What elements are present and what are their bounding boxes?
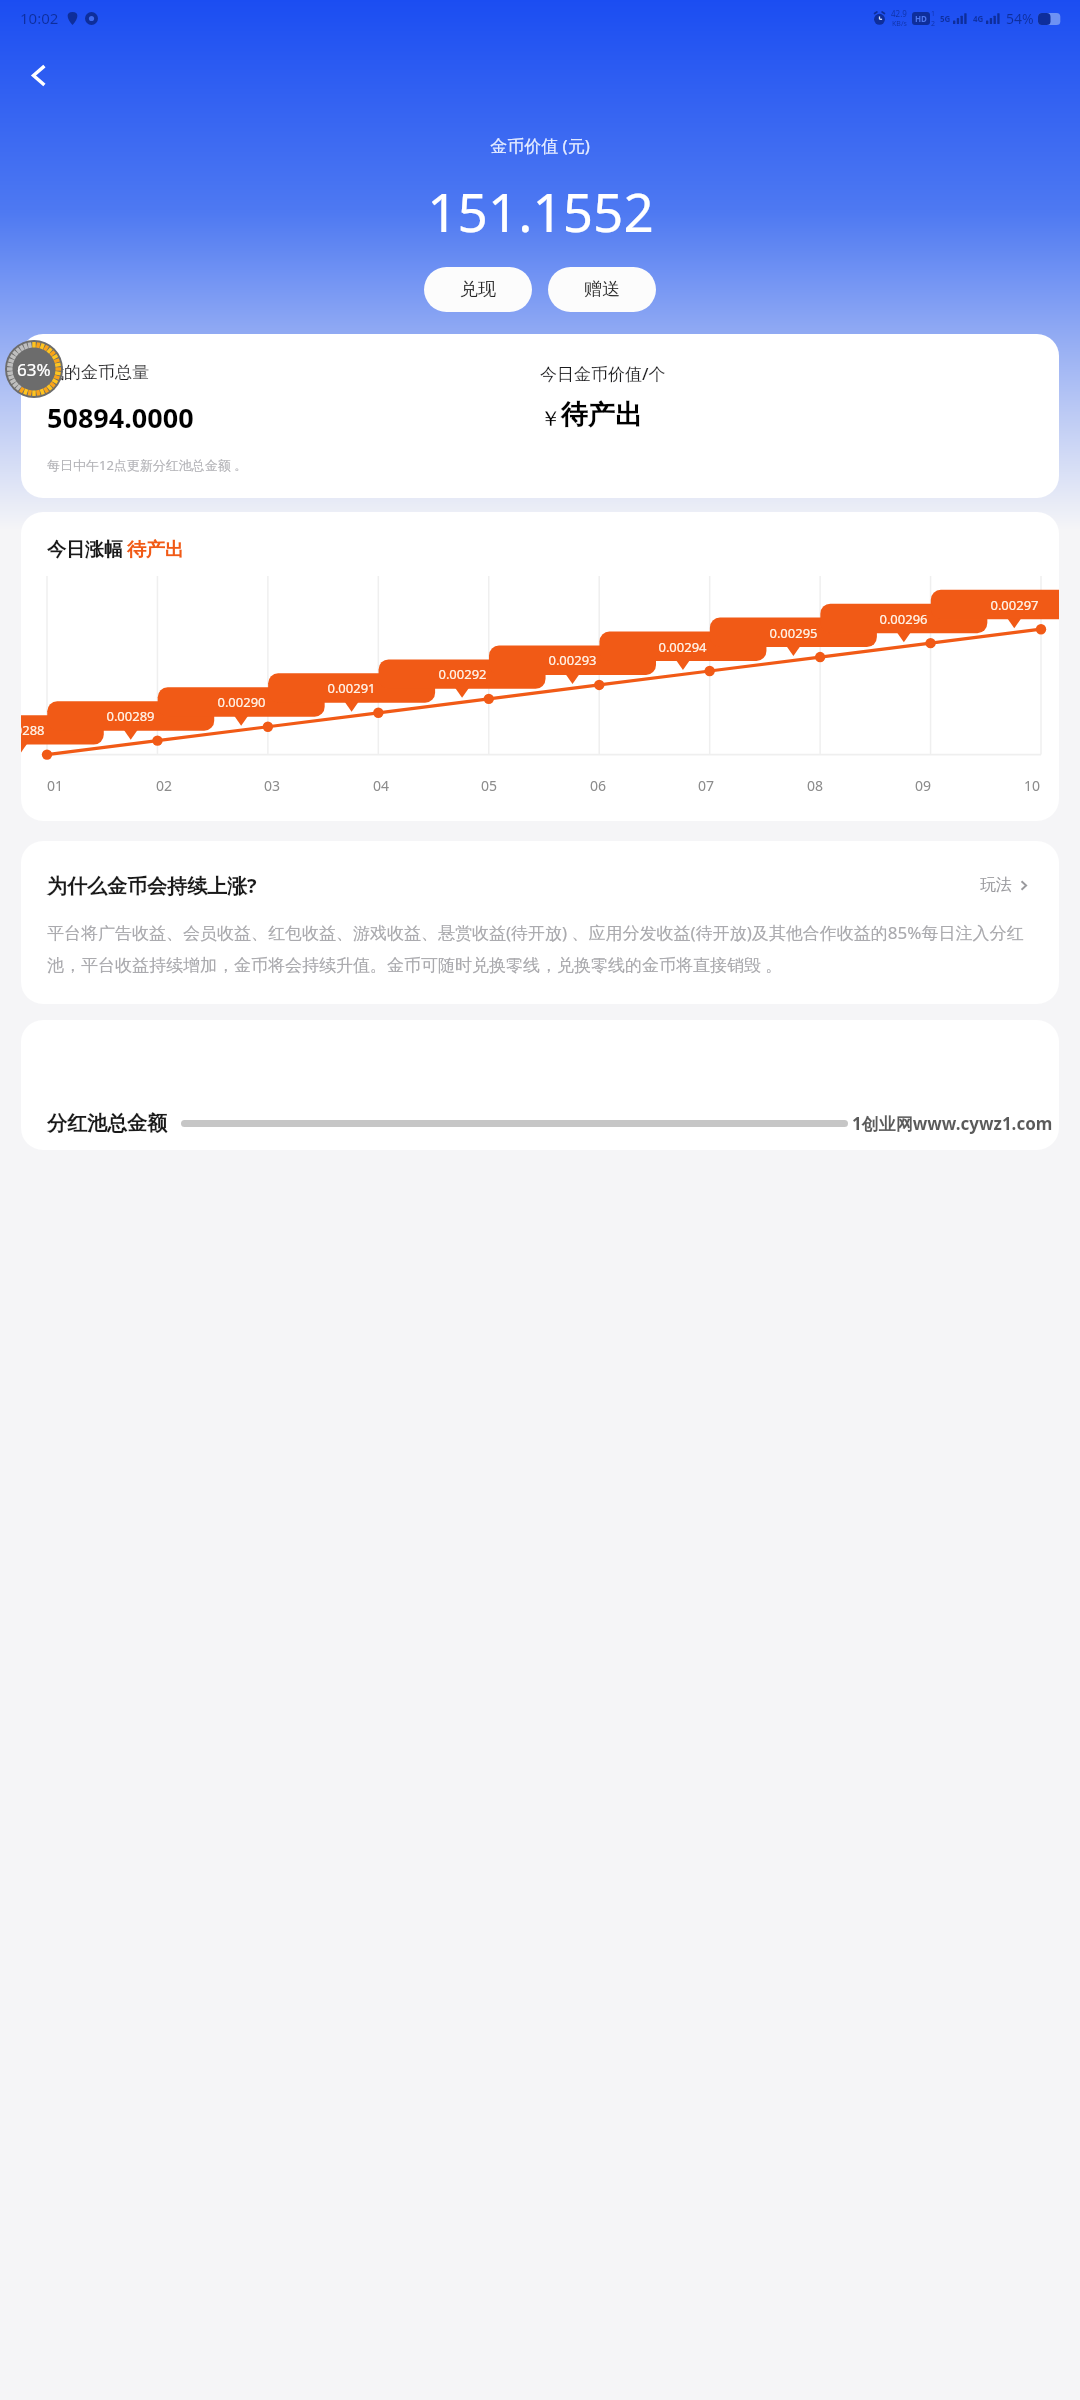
button[interactable]: 玩法 (976, 871, 1033, 899)
staticText: 0.00294 (658, 638, 707, 656)
staticText: 兑现 (460, 278, 496, 301)
staticText: 我的金币总量 (47, 362, 149, 383)
button[interactable]: 为什么金币会持续上涨? (21, 841, 1059, 1004)
staticText: 50894.0000 (47, 399, 194, 436)
staticText: 02 (156, 776, 173, 795)
staticText: 0.00290 (217, 693, 266, 711)
staticText: 07 (698, 776, 715, 795)
staticText: 2 (931, 19, 936, 29)
staticText: 分红池总金额 (47, 1111, 167, 1136)
staticText: 04 (373, 776, 390, 795)
staticText: HD (915, 13, 927, 24)
staticText: 玩法 (980, 875, 1012, 895)
button[interactable]: Back (14, 51, 62, 99)
staticText: 4G (973, 13, 984, 24)
button[interactable]: 今日涨幅 (21, 512, 1059, 821)
staticText: 今日金币价值/个 (540, 362, 666, 385)
staticText: 0.00288 (21, 721, 45, 739)
staticText: 今日涨幅 (47, 538, 123, 562)
button[interactable]: 分红池总金额 (21, 1020, 1059, 1150)
staticText: 05 (481, 776, 498, 795)
staticText: 每日中午12点更新分红池总金额 。 (47, 456, 248, 474)
staticText: 1创业网www.cywz1.com (852, 1112, 1053, 1135)
staticText: 10:02 (20, 8, 59, 28)
staticText: KB/s (892, 19, 907, 29)
button[interactable]: 兑现 (424, 267, 532, 312)
button[interactable]: 我的金币总量 (21, 334, 1059, 498)
staticText: 0.00295 (769, 624, 818, 642)
staticText: 151.1552 (427, 175, 654, 247)
staticText: 42.9 (891, 8, 907, 19)
staticText: 0.00291 (327, 679, 376, 697)
staticText: ￥ (540, 406, 561, 432)
button[interactable]: 赠送 (548, 267, 656, 312)
staticText: 0.00292 (438, 665, 487, 683)
staticText: 01 (47, 776, 64, 795)
staticText: 平台将广告收益、会员收益、红包收益、游戏收益、悬赏收益(待开放) 、应用分发收益… (47, 921, 1033, 976)
staticText: 0.00289 (106, 707, 155, 725)
staticText: 03 (264, 776, 281, 795)
staticText: 赠送 (584, 278, 620, 301)
staticText: 为什么金币会持续上涨? (47, 872, 976, 899)
staticText: 08 (807, 776, 824, 795)
staticText: 1 (931, 9, 936, 19)
staticText: 10 (1024, 776, 1041, 795)
staticText: 金币价值 (元) (490, 134, 590, 157)
staticText: 0.00296 (879, 610, 928, 628)
staticText: 09 (915, 776, 932, 795)
staticText: 63% (17, 358, 51, 381)
staticText: 待产出 (561, 398, 642, 432)
staticText: 54% (1006, 9, 1034, 28)
staticText: 5G (940, 13, 951, 24)
staticText: 0.00297 (990, 596, 1039, 614)
staticText: 待产出 (127, 538, 184, 562)
staticText: 06 (590, 776, 607, 795)
staticText: 0.00293 (548, 651, 597, 669)
